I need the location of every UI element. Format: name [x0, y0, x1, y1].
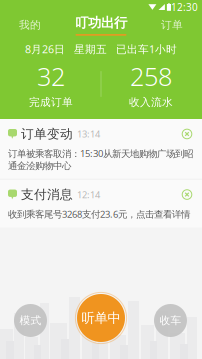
staticText: 我的	[19, 18, 41, 32]
staticText: 模式	[19, 314, 41, 327]
staticText: 完成订单	[29, 95, 73, 109]
staticText: 收车	[159, 314, 181, 327]
button[interactable]: 关闭通知	[180, 127, 194, 141]
button[interactable]: 订单	[142, 14, 202, 36]
staticText: 收入流水	[129, 95, 173, 109]
staticText: 258	[130, 59, 172, 93]
button[interactable]: 听单中	[77, 294, 125, 342]
staticText: 订单变动	[21, 126, 73, 142]
staticText: 支付消息	[21, 187, 73, 203]
staticText: 听单中	[81, 310, 120, 326]
staticText: 收到乘客尾号3268支付23.6元，点击查看详情	[8, 207, 190, 220]
staticText: 订单	[161, 18, 183, 32]
button[interactable]: 订单变动	[0, 119, 202, 179]
staticText: 13:14	[77, 128, 100, 140]
button[interactable]: 收车	[154, 304, 187, 337]
staticText: 12:14	[77, 188, 100, 201]
staticText: 叮功出行	[75, 14, 127, 31]
staticText: 8月26日 星期五 已出车1小时	[25, 42, 177, 56]
staticText: 订单被乘客取消：15:30从新天地购物广场到昭通金浍购物中心	[8, 147, 193, 172]
staticText: 12:30	[171, 0, 198, 14]
button[interactable]: 支付消息	[0, 180, 202, 227]
button[interactable]: 模式	[14, 304, 47, 337]
button[interactable]: 关闭通知	[180, 188, 194, 202]
staticText: 32	[37, 59, 65, 93]
button[interactable]: 我的	[0, 14, 60, 36]
